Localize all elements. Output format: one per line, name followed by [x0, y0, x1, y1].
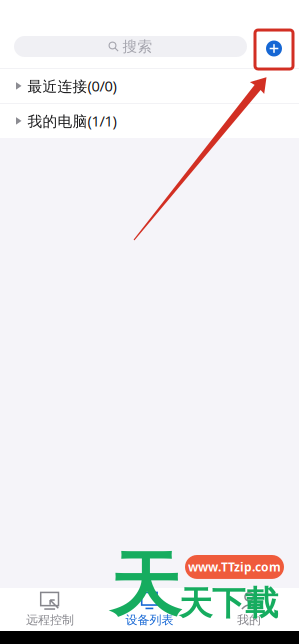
- staticText: 最近连接(0/0): [27, 76, 116, 96]
- staticText: www.TTzip.com: [188, 559, 281, 575]
- button[interactable]: 最近连接(0/0): [0, 69, 299, 103]
- staticText: 天: [110, 542, 181, 629]
- staticText: 远程控制: [26, 613, 74, 627]
- button[interactable]: 远程控制: [0, 588, 100, 631]
- button[interactable]: 设备列表: [100, 588, 199, 631]
- staticText: 我的: [237, 613, 261, 627]
- button[interactable]: 我的电脑(1/1): [0, 104, 299, 138]
- staticText: 我的电脑(1/1): [27, 111, 116, 131]
- staticText: 设备列表: [125, 613, 173, 627]
- button[interactable]: 我的: [199, 588, 299, 631]
- button[interactable]: 添加设备: [255, 29, 293, 68]
- staticText: 搜索: [122, 37, 152, 55]
- staticText: 天下載: [179, 583, 278, 624]
